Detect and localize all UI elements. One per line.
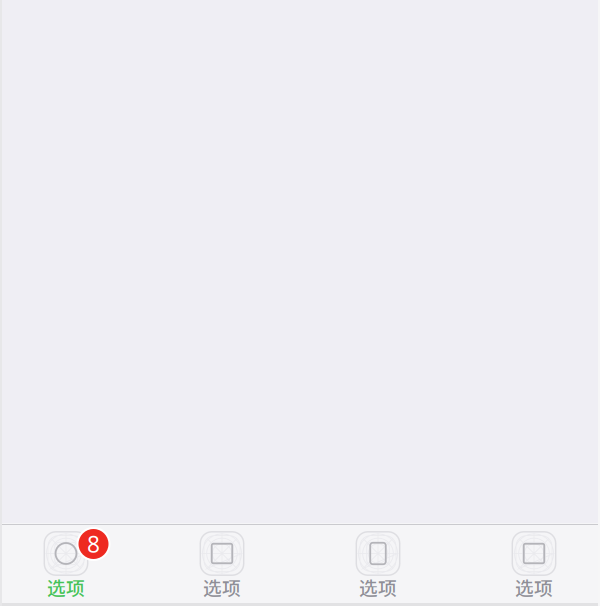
staticText: 选项	[515, 573, 553, 600]
button[interactable]: 选项	[456, 523, 600, 605]
button[interactable]: 选项	[0, 523, 144, 605]
button[interactable]: 选项	[300, 523, 456, 605]
button[interactable]: 选项	[144, 523, 300, 605]
staticText: 选项	[47, 573, 85, 600]
staticText: 8	[87, 529, 100, 559]
staticText: 选项	[359, 573, 397, 600]
staticText: 选项	[203, 573, 241, 600]
